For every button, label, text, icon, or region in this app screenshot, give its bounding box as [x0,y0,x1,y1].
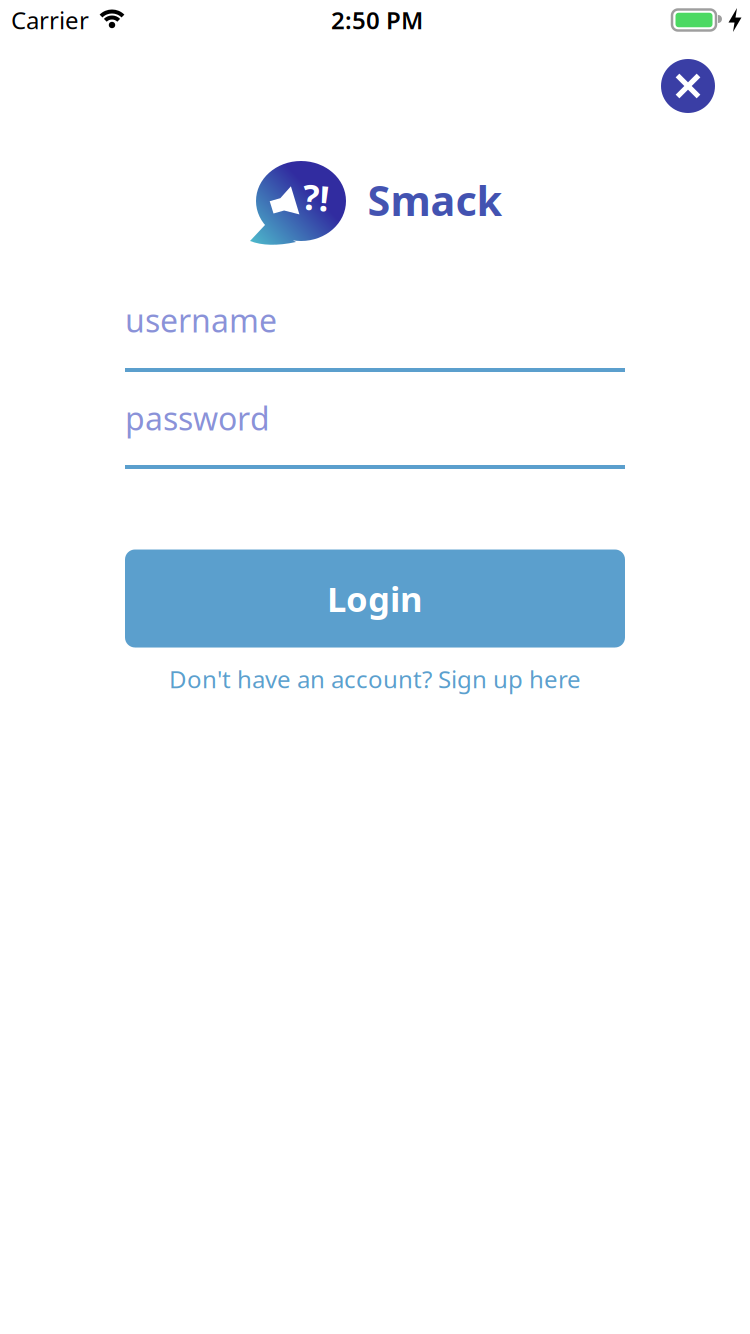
button[interactable]: Login [125,549,625,647]
staticText: password [125,397,270,439]
staticText: Login [327,575,423,621]
button[interactable]: Don't have an account? Sign up here [169,663,581,695]
staticText: username [125,299,277,341]
staticText: Carrier [11,4,89,36]
staticText: Don't have an account? Sign up here [169,663,581,695]
button[interactable]: Close [661,59,715,113]
staticText: Smack [367,173,502,227]
staticText: 2:50 PM [331,4,423,36]
staticText: ?! [302,174,329,220]
